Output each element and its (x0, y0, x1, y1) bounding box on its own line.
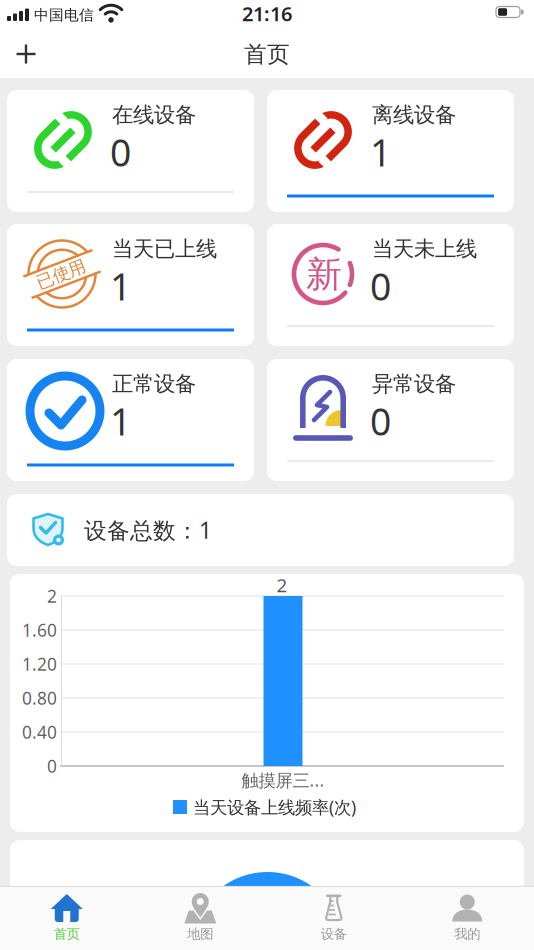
button[interactable]: 首页 (15, 886, 119, 950)
staticText: 在线设备 (112, 102, 196, 128)
staticText: 正常设备 (112, 371, 196, 397)
staticText: 首页 (244, 41, 290, 68)
staticText: 0 (47, 754, 57, 777)
button[interactable]: 设备 (282, 886, 386, 950)
staticText: 触摸屏三... (241, 768, 324, 791)
staticText: 离线设备 (372, 102, 456, 128)
staticText: 1 (370, 127, 391, 177)
staticText: 0 (110, 127, 131, 177)
staticText: 1 (110, 396, 131, 446)
button[interactable]: 新 (267, 224, 514, 346)
button[interactable]: 在线设备 (7, 90, 254, 212)
button[interactable]: 正常设备 (7, 359, 254, 481)
staticText: 当天未上线 (372, 236, 477, 262)
staticText: 2 (276, 573, 287, 597)
staticText: 我的 (454, 926, 480, 942)
staticText: 0.80 (22, 686, 57, 709)
staticText: 0 (370, 261, 391, 311)
button[interactable]: 我的 (415, 886, 519, 950)
staticText: 1.60 (22, 618, 57, 641)
staticText: 首页 (54, 926, 80, 942)
staticText: 地图 (187, 926, 213, 942)
staticText: 1.20 (22, 652, 57, 675)
staticText: 设备总数：1 (84, 515, 212, 545)
button[interactable]: 地图 (148, 886, 252, 950)
staticText: 新 (306, 252, 342, 297)
staticText: 当天已上线 (112, 236, 217, 262)
staticText: 已使用 (35, 263, 86, 285)
staticText: 设备 (321, 926, 347, 942)
button[interactable]: 设备总数：1 (7, 494, 514, 566)
button[interactable]: 异常设备 (267, 359, 514, 481)
staticText: 0.40 (22, 720, 57, 743)
staticText: 异常设备 (372, 371, 456, 397)
button[interactable]: 已使用 (7, 224, 254, 346)
staticText: 1 (110, 261, 131, 311)
staticText: 21:16 (242, 0, 292, 27)
button[interactable]: 添加 (16, 44, 35, 63)
staticText: 中国电信 (34, 6, 94, 24)
staticText: 0 (370, 396, 391, 446)
staticText: 2 (47, 584, 57, 607)
staticText: 当天设备上线频率(次) (193, 795, 356, 818)
button[interactable]: 离线设备 (267, 90, 514, 212)
